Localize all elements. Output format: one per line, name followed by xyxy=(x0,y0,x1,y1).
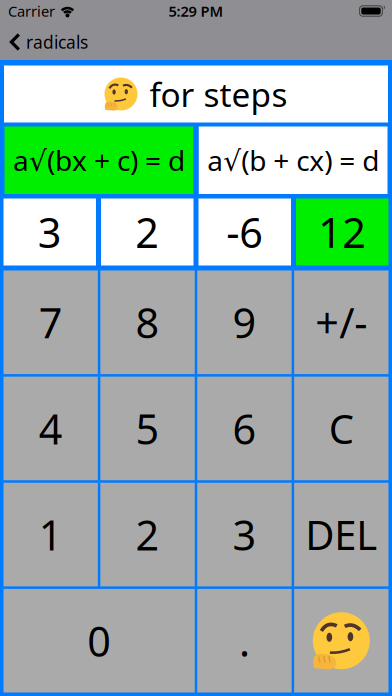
staticText: 1 xyxy=(39,507,63,562)
button[interactable]: 8 xyxy=(100,270,195,374)
staticText: radicals xyxy=(26,30,88,53)
button[interactable]: 0 xyxy=(3,589,195,692)
button[interactable]: . xyxy=(197,589,292,692)
staticText: 6 xyxy=(232,401,256,456)
button[interactable]: 4 xyxy=(3,377,98,480)
button[interactable]: -6 xyxy=(198,198,291,265)
button[interactable]: 3 xyxy=(3,198,96,265)
staticText: 2 xyxy=(135,205,159,259)
staticText: a√(bx + c) = d xyxy=(13,142,185,179)
button[interactable]: 5 xyxy=(100,377,195,480)
staticText: 5:29 PM xyxy=(168,1,223,21)
button[interactable]: 2 xyxy=(101,198,193,265)
button[interactable]: 6 xyxy=(197,377,292,480)
staticText: 0 xyxy=(87,613,111,668)
staticText: 4 xyxy=(39,401,63,456)
staticText: 7 xyxy=(39,295,63,350)
button[interactable]: 3 xyxy=(197,483,292,586)
staticText: Carrier xyxy=(8,1,55,21)
staticText: 3 xyxy=(232,507,256,562)
staticText: . xyxy=(239,613,250,668)
button[interactable]: a√(b + cx) = d xyxy=(199,126,388,194)
button[interactable]: 9 xyxy=(197,270,292,374)
staticText: DEL xyxy=(305,508,377,561)
staticText: 2 xyxy=(136,507,160,562)
staticText: 3 xyxy=(38,205,62,259)
staticText: C xyxy=(329,402,354,455)
staticText: 5 xyxy=(136,401,160,456)
button[interactable]: 2 xyxy=(100,483,195,586)
button[interactable]: 7 xyxy=(3,270,98,374)
button[interactable] xyxy=(294,589,388,692)
button[interactable]: DEL xyxy=(294,483,388,586)
staticText: a√(b + cx) = d xyxy=(207,142,379,179)
button[interactable]: +/- xyxy=(294,270,388,374)
button[interactable]: 12 xyxy=(296,198,388,265)
staticText: 8 xyxy=(136,295,160,350)
button[interactable]: 1 xyxy=(3,483,98,586)
staticText: 12 xyxy=(318,205,366,259)
button[interactable]: for steps xyxy=(4,65,388,122)
staticText: for steps xyxy=(149,72,287,116)
staticText: 9 xyxy=(232,295,256,350)
staticText: -6 xyxy=(226,205,263,259)
button[interactable]: a√(bx + c) = d xyxy=(4,126,193,194)
staticText: +/- xyxy=(315,295,367,350)
button[interactable]: radicals xyxy=(0,30,88,53)
button[interactable]: C xyxy=(294,377,388,480)
